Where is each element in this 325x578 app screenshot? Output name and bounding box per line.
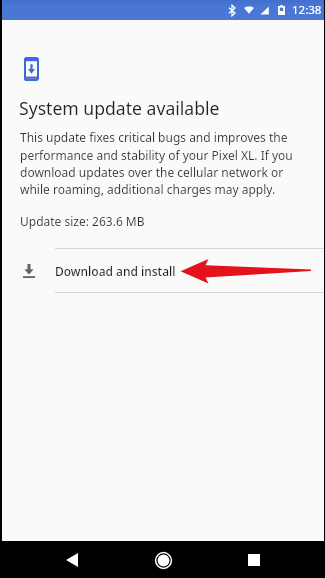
staticText: Download and install (55, 263, 176, 279)
staticText: 12:38 (292, 2, 322, 18)
button[interactable]: Download and install (0, 249, 325, 293)
button[interactable]: Back (56, 544, 88, 576)
staticText: This update fixes critical bugs and impr… (20, 129, 298, 197)
button[interactable]: Home (147, 544, 179, 576)
button[interactable]: Recents (238, 544, 270, 576)
staticText: Update size: 263.6 MB (20, 213, 145, 229)
staticText: System update available (19, 96, 220, 120)
